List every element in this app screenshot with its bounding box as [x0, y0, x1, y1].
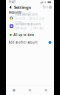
- button[interactable]: Edit: [43, 5, 49, 9]
- staticText: name@gmail.com: [15, 13, 37, 16]
- staticText: Google · Synced just now: [15, 17, 44, 24]
- staticText: 9:41: [9, 0, 16, 4]
- button[interactable]: name@gmail.com: [6, 14, 54, 22]
- button[interactable]: Profile: [49, 6, 52, 9]
- staticText: Exchange · 2 min ago: [15, 26, 44, 30]
- button[interactable]: Tab: [22, 85, 38, 95]
- staticText: All up to date: [13, 33, 34, 37]
- staticText: work@company.com: [15, 22, 40, 26]
- staticText: Edit: [43, 5, 48, 9]
- button[interactable]: Tab: [38, 85, 54, 95]
- button[interactable]: work@company.com: [6, 22, 54, 30]
- staticText: Settings: [14, 5, 31, 10]
- staticText: Accounts: [9, 11, 21, 14]
- button[interactable]: Tab: [6, 85, 22, 95]
- button[interactable]: Back: [8, 5, 13, 10]
- staticText: Add another account: [9, 41, 38, 44]
- button[interactable]: Add another account: [6, 37, 54, 44]
